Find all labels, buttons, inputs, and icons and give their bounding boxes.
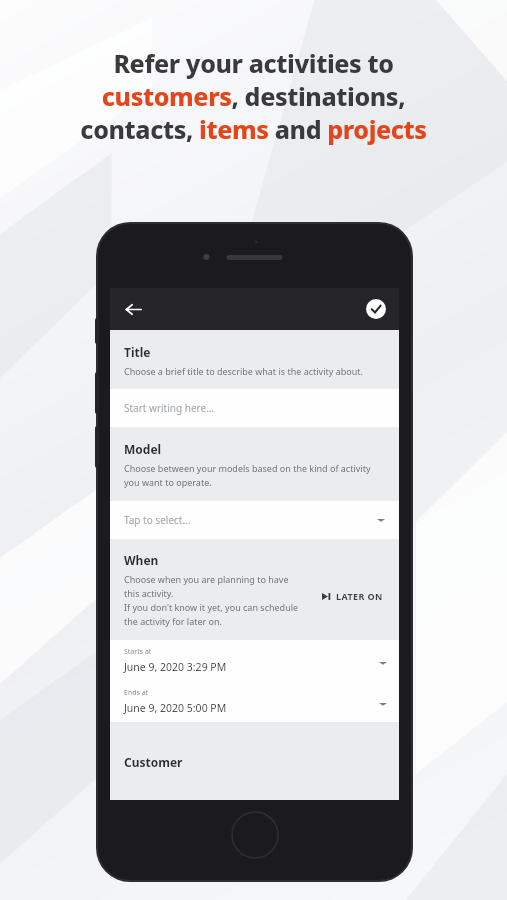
staticText: June 9, 2020 3:29 PM bbox=[124, 660, 227, 674]
button[interactable]: Tap to select... bbox=[110, 501, 399, 539]
staticText: Customer bbox=[124, 754, 183, 770]
staticText: Choose a brief title to describe what is… bbox=[124, 365, 363, 377]
staticText: Starts at bbox=[124, 647, 152, 657]
button[interactable]: Ends at bbox=[110, 681, 399, 722]
staticText: Start writing here... bbox=[124, 401, 215, 415]
staticText: Refer your activities to customers, dest… bbox=[20, 46, 487, 146]
staticText: LATER ON bbox=[336, 590, 383, 602]
staticText: Choose between your models based on the … bbox=[124, 462, 371, 489]
button[interactable]: Start writing here... bbox=[110, 389, 399, 427]
staticText: June 9, 2020 5:00 PM bbox=[124, 701, 227, 715]
staticText: Choose when you are planning to have thi… bbox=[124, 573, 299, 628]
button[interactable]: LATER ON bbox=[318, 586, 387, 606]
staticText: Ends at bbox=[124, 688, 149, 698]
staticText: Title bbox=[124, 344, 151, 360]
button[interactable]: Back bbox=[116, 292, 150, 326]
button[interactable]: Starts at bbox=[110, 640, 399, 681]
staticText: Model bbox=[124, 441, 162, 457]
staticText: Tap to select... bbox=[124, 513, 191, 527]
button[interactable]: Confirm bbox=[361, 294, 391, 324]
staticText: When bbox=[124, 552, 159, 568]
